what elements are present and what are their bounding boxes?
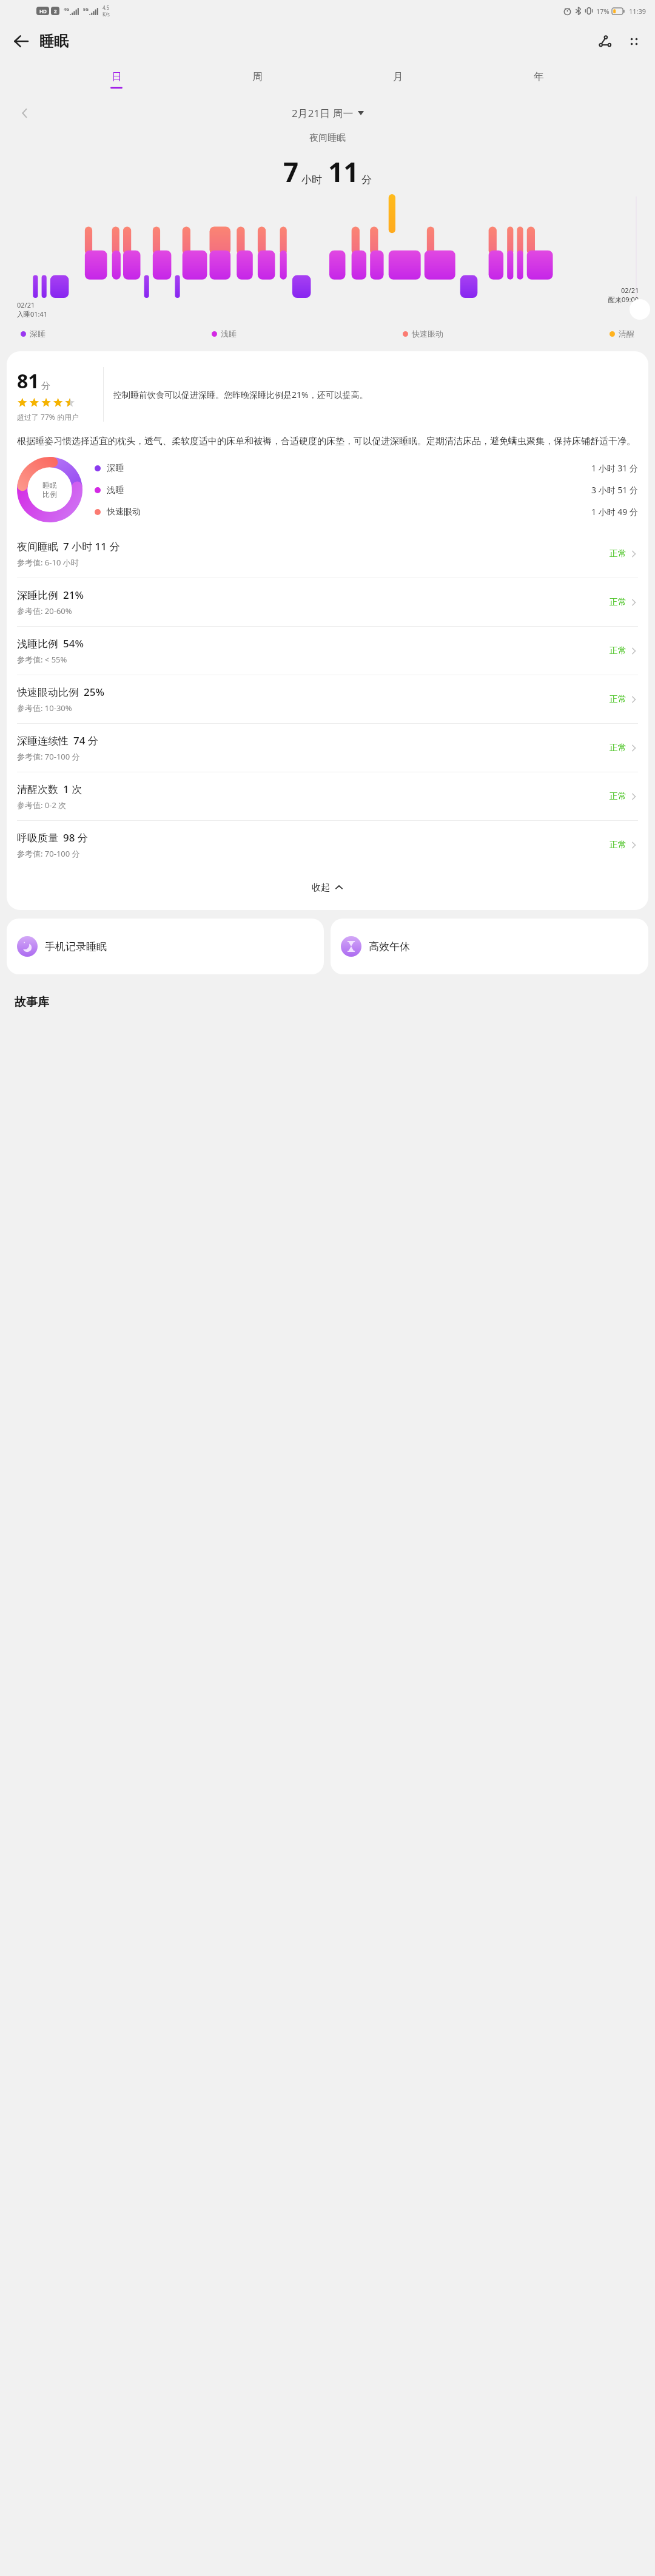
button[interactable]: 周 [187, 61, 327, 98]
staticText: 深睡 [107, 463, 124, 474]
staticText: 小时 [301, 174, 322, 186]
button[interactable]: 清醒次数 [17, 772, 638, 821]
staticText: 正常 [610, 694, 626, 705]
staticText: 醒来09:00 [608, 295, 639, 304]
staticText: 浅睡比例 [17, 638, 58, 650]
staticText: 参考值: 10-30% [17, 703, 72, 713]
button[interactable]: 呼吸质量 [17, 821, 638, 869]
staticText: 54% [63, 636, 84, 650]
staticText: 02/21 [17, 300, 35, 309]
staticText: 正常 [610, 597, 626, 608]
staticText: 2月21日 周一 [292, 106, 354, 120]
staticText: 4.5 [102, 4, 110, 11]
staticText: 02/21 [621, 286, 639, 295]
staticText: 分 [41, 380, 50, 392]
staticText: 2 [54, 8, 57, 15]
staticText: 高效午休 [369, 940, 410, 953]
staticText: 参考值: < 55% [17, 654, 67, 665]
staticText: 正常 [610, 646, 626, 656]
staticText: 故事库 [15, 995, 49, 1010]
staticText: 根据睡姿习惯选择适宜的枕头，透气、柔软度适中的床单和被褥，合适硬度的床垫，可以促… [17, 436, 636, 447]
staticText: 月 [393, 70, 403, 83]
staticText: 参考值: 0-2 次 [17, 800, 67, 811]
staticText: 夜间睡眠 [17, 541, 58, 553]
button[interactable]: More options [619, 27, 648, 56]
button[interactable]: 年 [468, 61, 609, 98]
staticText: 清醒 [619, 329, 634, 339]
button[interactable]: Previous day [12, 100, 38, 126]
button[interactable]: 夜间睡眠 [17, 530, 638, 578]
staticText: 21% [63, 588, 84, 602]
staticText: 收起 [312, 882, 330, 894]
staticText: 超过了 77% 的用户 [17, 412, 79, 422]
staticText: 25% [84, 685, 104, 699]
button[interactable]: 手机记录睡眠 [7, 919, 324, 974]
staticText: 深睡 [30, 329, 45, 339]
staticText: 正常 [610, 840, 626, 851]
staticText: HD [39, 8, 47, 15]
staticText: 3 小时 51 分 [591, 484, 638, 496]
staticText: 浅睡 [221, 329, 237, 339]
button[interactable]: 浅睡比例 [17, 627, 638, 675]
staticText: 快速眼动比例 [17, 686, 79, 699]
staticText: 5G [83, 7, 89, 13]
staticText: 1 小时 31 分 [591, 462, 638, 474]
staticText: 1 次 [63, 782, 82, 796]
staticText: 睡眠 [39, 32, 69, 50]
staticText: 74 分 [73, 733, 98, 747]
staticText: 快速眼动 [107, 507, 141, 518]
staticText: 深睡连续性 [17, 735, 69, 747]
staticText: 手机记录睡眠 [45, 940, 107, 953]
staticText: 11 [328, 153, 359, 190]
staticText: 日 [112, 70, 122, 83]
staticText: 参考值: 20-60% [17, 605, 72, 616]
staticText: 睡眠 [42, 480, 57, 490]
staticText: 17% [596, 7, 610, 16]
staticText: 入睡01:41 [17, 309, 48, 319]
staticText: 周 [252, 70, 263, 83]
staticText: 正常 [610, 548, 626, 559]
button[interactable]: 高效午休 [331, 919, 648, 974]
staticText: 参考值: 70-100 分 [17, 848, 80, 859]
staticText: 年 [534, 70, 544, 83]
staticText: 夜间睡眠 [0, 132, 655, 144]
staticText: 呼吸质量 [17, 832, 58, 845]
staticText: 7 小时 11 分 [63, 539, 120, 553]
button[interactable]: 月 [327, 61, 468, 98]
staticText: 浅睡 [107, 485, 124, 496]
staticText: 正常 [610, 791, 626, 802]
staticText: 4G [64, 7, 70, 13]
button[interactable]: Back [7, 27, 36, 56]
staticText: 1 小时 49 分 [591, 506, 638, 518]
button[interactable]: 快速眼动比例 [17, 675, 638, 724]
staticText: 控制睡前饮食可以促进深睡。您昨晚深睡比例是21%，还可以提高。 [113, 389, 368, 400]
button[interactable]: 深睡比例 [17, 578, 638, 627]
button[interactable]: 深睡连续性 [17, 724, 638, 772]
staticText: 清醒次数 [17, 783, 58, 796]
staticText: 分 [361, 174, 372, 186]
button[interactable]: 2月21日 周一 [288, 104, 368, 123]
staticText: 正常 [610, 743, 626, 754]
button[interactable]: 日 [46, 61, 187, 98]
button[interactable]: 收起 [17, 869, 638, 906]
staticText: 11:39 [629, 7, 647, 16]
staticText: 参考值: 6-10 小时 [17, 557, 79, 568]
staticText: 7 [283, 153, 299, 190]
staticText: 深睡比例 [17, 589, 58, 602]
staticText: 81 [17, 368, 39, 394]
staticText: K/s [102, 11, 110, 18]
staticText: 98 分 [63, 831, 88, 845]
staticText: 快速眼动 [412, 329, 443, 339]
button[interactable]: Share [590, 27, 619, 56]
staticText: 参考值: 70-100 分 [17, 751, 80, 762]
staticText: 比例 [42, 490, 57, 499]
